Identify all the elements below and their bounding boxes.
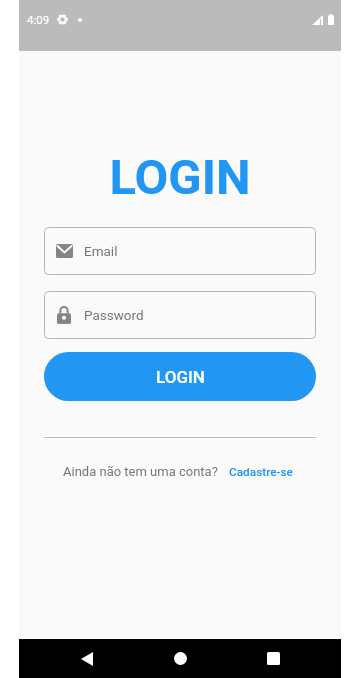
button[interactable]: Back	[64, 639, 110, 678]
button[interactable]: Email	[44, 227, 316, 275]
button[interactable]: LOGIN	[44, 352, 316, 401]
button[interactable]: Password	[44, 291, 316, 339]
button[interactable]: Recents	[250, 639, 296, 678]
staticText: LOGIN	[156, 367, 205, 387]
staticText: Ainda não tem uma conta?	[63, 464, 218, 479]
staticText: Email	[84, 243, 118, 259]
button[interactable]: Cadastre-se	[229, 465, 293, 479]
button[interactable]: Home	[157, 639, 203, 678]
staticText: Cadastre-se	[229, 465, 293, 479]
staticText: Password	[84, 307, 144, 323]
staticText: 4:09	[27, 13, 50, 26]
staticText: LOGIN	[19, 149, 341, 206]
